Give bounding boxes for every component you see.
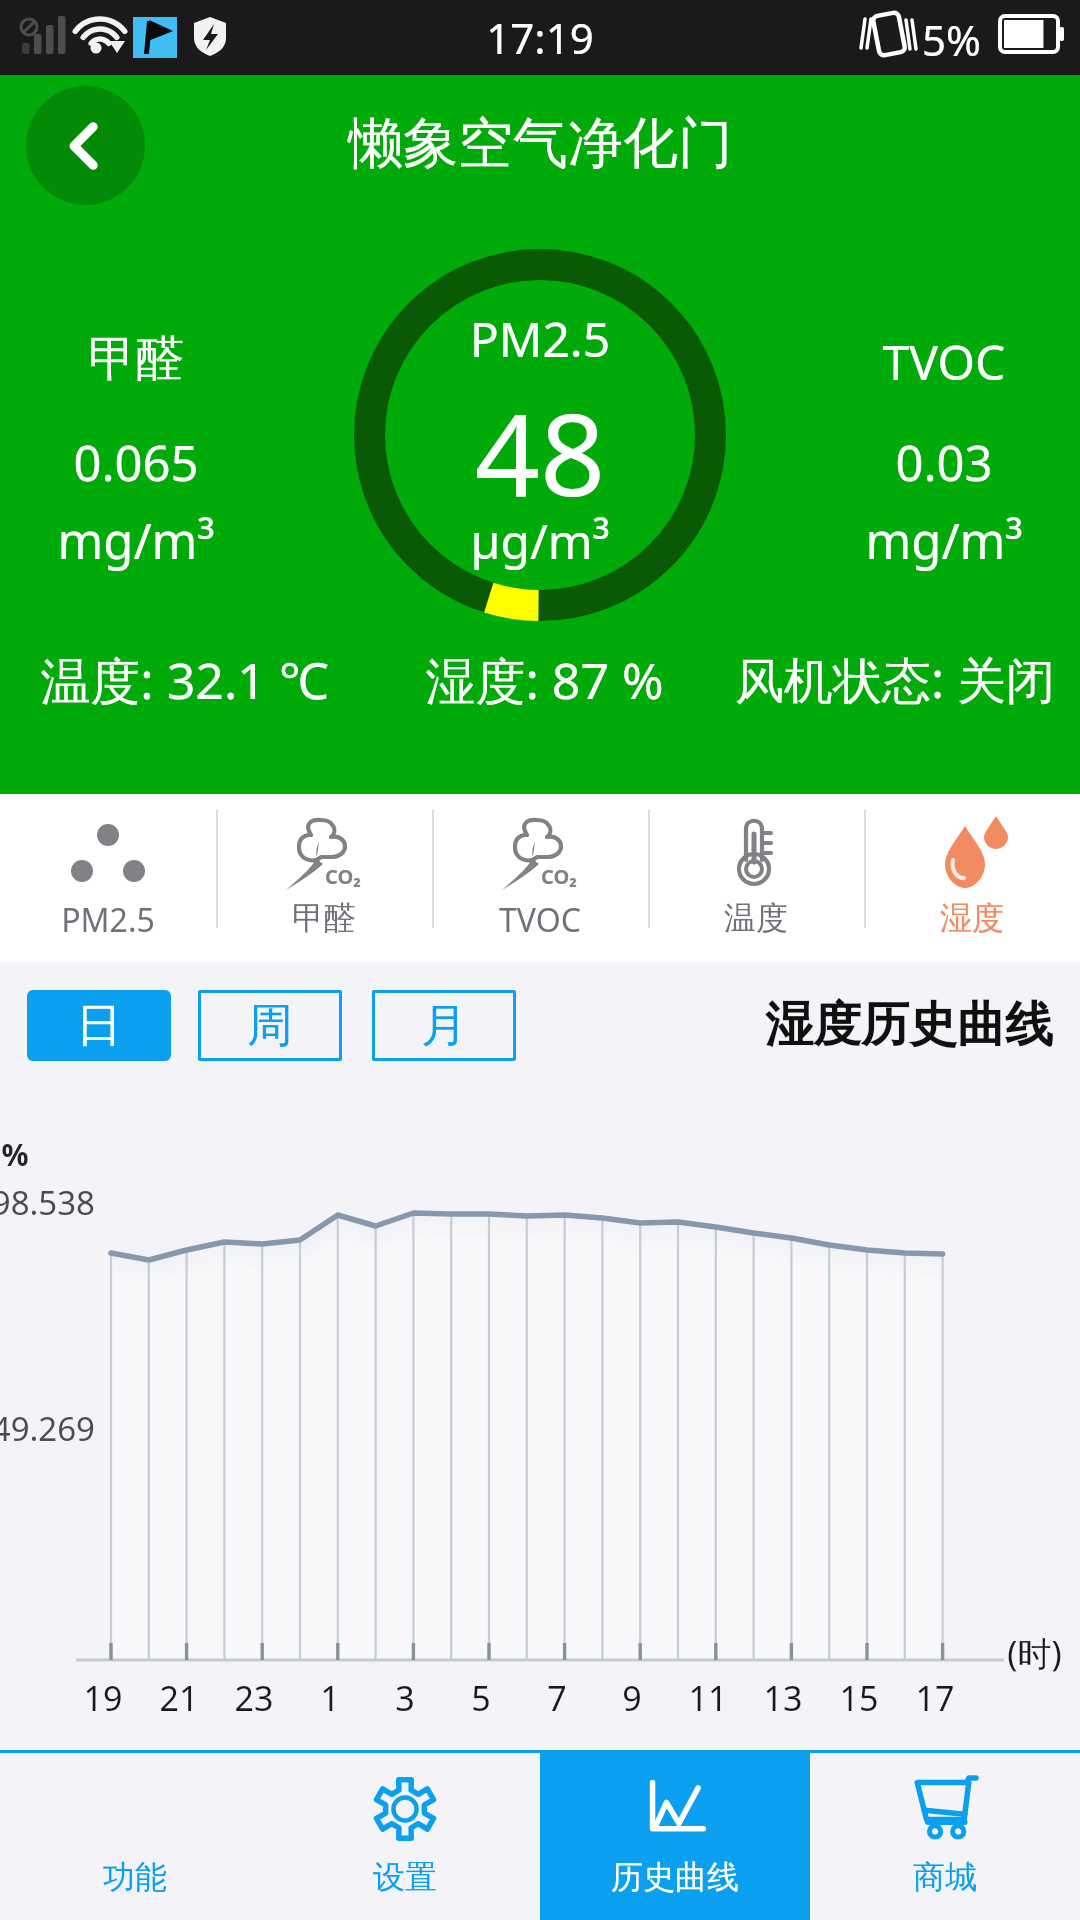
button[interactable]: 月 — [372, 990, 516, 1061]
button[interactable]: 周 — [198, 990, 342, 1061]
staticText: 温度: 32.1 ℃ — [40, 646, 329, 714]
staticText: PM2.5 — [0, 898, 216, 942]
button[interactable]: Back — [26, 86, 145, 205]
button[interactable]: CO₂ — [216, 794, 432, 962]
staticText: 温度 — [648, 898, 864, 938]
staticText: 23 — [214, 1675, 294, 1721]
staticText: 甲醛 — [16, 329, 256, 389]
staticText: TVOC — [432, 898, 648, 942]
staticText: µg/m³ — [354, 508, 726, 573]
staticText: 风机状态: 关闭 — [735, 646, 1055, 713]
staticText: 湿度: 87 % — [425, 646, 664, 714]
staticText: 19 — [63, 1675, 143, 1721]
button[interactable]: 温度 — [648, 794, 864, 962]
staticText: PM2.5 — [354, 306, 726, 371]
staticText: (时) — [1007, 1630, 1062, 1676]
staticText: 21 — [139, 1675, 219, 1721]
staticText: 日 — [76, 997, 122, 1055]
staticText: TVOC — [824, 329, 1064, 394]
button[interactable]: PM2.5 — [0, 794, 216, 962]
staticText: 7 — [517, 1675, 597, 1721]
staticText: CO₂ — [325, 863, 361, 890]
staticText: mg/m³ — [824, 507, 1064, 574]
staticText: 历史曲线 — [540, 1857, 810, 1897]
button[interactable]: 商城 — [810, 1753, 1080, 1920]
staticText: 懒象空气净化门 — [348, 109, 733, 178]
staticText: 湿度 — [864, 898, 1080, 938]
staticText: 5 — [441, 1675, 521, 1721]
button[interactable]: 历史曲线 — [540, 1753, 810, 1920]
staticText: 设置 — [270, 1857, 540, 1897]
staticText: 11 — [668, 1675, 748, 1721]
staticText: 9 — [592, 1675, 672, 1721]
staticText: 17 — [895, 1675, 975, 1721]
staticText: 49.269 — [0, 1406, 95, 1451]
staticText: 周 — [247, 997, 293, 1055]
staticText: 月 — [421, 997, 467, 1055]
staticText: % — [1, 1134, 29, 1175]
staticText: 0.03 — [824, 429, 1064, 496]
staticText: 5% — [922, 11, 981, 68]
button[interactable]: 功能 — [0, 1753, 270, 1920]
staticText: 商城 — [810, 1857, 1080, 1897]
staticText: 98.538 — [0, 1180, 95, 1225]
staticText: 甲醛 — [216, 898, 432, 938]
button[interactable]: 设置 — [270, 1753, 540, 1920]
staticText: 3 — [365, 1675, 445, 1721]
staticText: 湿度历史曲线 — [765, 995, 1053, 1055]
staticText: 0.065 — [16, 429, 256, 496]
button[interactable]: CO₂ — [432, 794, 648, 962]
staticText: 功能 — [0, 1857, 270, 1897]
staticText: 17:19 — [486, 9, 594, 66]
staticText: CO₂ — [541, 863, 577, 890]
staticText: 13 — [743, 1675, 823, 1721]
staticText: mg/m³ — [16, 507, 256, 574]
staticText: 48 — [354, 374, 726, 529]
button[interactable]: 湿度 — [864, 794, 1080, 962]
button[interactable]: 日 — [27, 990, 171, 1061]
staticText: 1 — [290, 1675, 370, 1721]
staticText: 15 — [819, 1675, 899, 1721]
